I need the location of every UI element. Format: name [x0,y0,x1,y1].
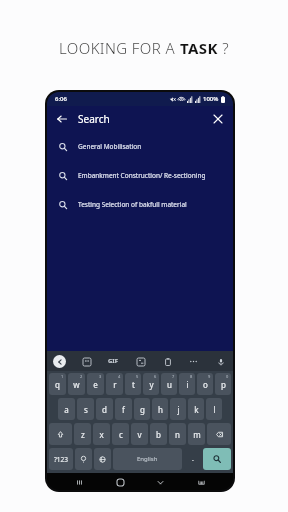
staticText: 5 [136,374,139,379]
staticText: c [119,429,123,440]
button[interactable]: Clipboard [161,355,174,368]
staticText: 6:06 [55,95,67,103]
button[interactable]: f [115,398,132,420]
button[interactable]: Back [54,111,70,127]
button[interactable]: i [179,373,195,395]
staticText: i [186,379,189,390]
button[interactable]: Expand toolbar [53,355,66,368]
button[interactable]: Close [210,111,226,127]
button[interactable]: Emoji [75,448,92,470]
staticText: d [102,404,107,415]
button[interactable]: Embankment Construction/ Re-sectioning [47,161,233,190]
button[interactable]: o [197,373,213,395]
staticText: 4 [118,374,121,379]
staticText: h [158,404,163,415]
staticText: 7 [172,374,175,379]
staticText: o [203,379,208,390]
staticText: s [84,404,88,415]
button[interactable]: j [170,398,186,420]
button[interactable]: w [68,373,85,395]
staticText: w [73,379,80,390]
button[interactable]: ?123 [49,448,73,470]
staticText: b [156,429,161,440]
staticText: m [193,429,201,440]
button[interactable]: Voice input [214,355,227,368]
button[interactable]: y [143,373,159,395]
staticText: v [137,429,142,440]
button[interactable]: q [49,373,66,395]
staticText: l [213,404,216,415]
button[interactable]: t [125,373,141,395]
staticText: q [55,379,60,390]
button[interactable]: General Mobilisation [47,132,233,161]
staticText: TASK [180,38,218,58]
staticText: GIF [108,357,118,365]
button[interactable]: e [87,373,104,395]
staticText: 8 [190,374,193,379]
staticText: t [132,379,135,390]
button[interactable]: g [134,398,150,420]
button[interactable]: Translate [134,355,147,368]
button[interactable]: k [188,398,204,420]
button[interactable]: Stickers [80,355,93,368]
button[interactable]: x [93,423,110,445]
button[interactable]: m [188,423,205,445]
staticText: 3 [99,374,102,379]
staticText: g [140,404,145,415]
button[interactable]: Language [94,448,111,470]
staticText: n [175,429,180,440]
staticText: y [149,379,154,390]
staticText: j [177,404,180,415]
button[interactable]: b [150,423,167,445]
button[interactable]: . [184,448,201,470]
button[interactable]: a [58,398,75,420]
staticText: 9 [208,374,211,379]
staticText: LOOKING FOR A [59,38,180,58]
button[interactable]: Testing Selection of bakfull material [47,190,233,219]
staticText: ? [218,38,230,58]
staticText: 2 [80,374,83,379]
button[interactable]: h [152,398,168,420]
staticText: k [194,404,199,415]
staticText: p [221,379,226,390]
staticText: f [122,404,125,415]
staticText: ?123 [54,455,68,464]
staticText: . [192,454,194,464]
staticText: a [64,404,69,415]
button[interactable]: Search [203,448,231,470]
button[interactable]: v [131,423,148,445]
staticText: Search [78,112,110,126]
staticText: Embankment Construction/ Re-sectioning [78,171,206,180]
button[interactable]: More options [187,355,200,368]
button[interactable]: d [96,398,113,420]
staticText: Testing Selection of bakfull material [78,200,187,209]
staticText: 6 [154,374,157,379]
button[interactable]: r [106,373,123,395]
staticText: e [93,379,98,390]
button[interactable]: Keyboard layout [193,474,209,490]
staticText: 0 [226,374,229,379]
button[interactable]: Hide keyboard [152,474,168,490]
button[interactable]: n [169,423,186,445]
staticText: 100% [203,95,219,103]
button[interactable]: Recents [71,474,87,490]
staticText: English [137,455,158,463]
button[interactable]: s [77,398,94,420]
staticText: General Mobilisation [78,142,142,151]
button[interactable]: Backspace [207,423,231,445]
staticText: z [81,429,85,440]
button[interactable]: z [74,423,91,445]
button[interactable]: Shift [49,423,72,445]
staticText: x [99,429,104,440]
staticText: 1 [61,374,64,379]
button[interactable]: Home [112,474,128,490]
button[interactable]: u [161,373,177,395]
staticText: u [167,379,172,390]
button[interactable]: GIF [106,355,120,367]
staticText: r [113,379,117,390]
button[interactable]: English [113,448,182,470]
button[interactable]: l [206,398,222,420]
button[interactable]: c [112,423,129,445]
button[interactable]: p [215,373,231,395]
